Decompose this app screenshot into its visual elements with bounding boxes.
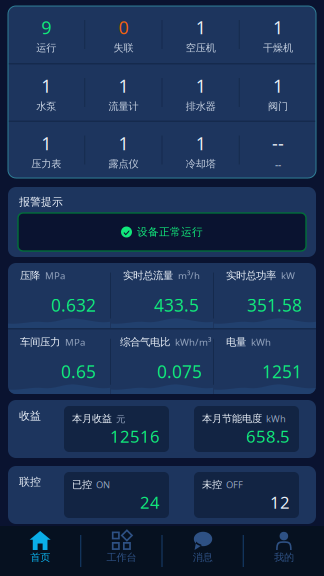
staticText: 运行 [36, 41, 56, 54]
button[interactable]: 工作台 [81, 526, 161, 576]
staticText: 工作台 [106, 551, 136, 564]
staticText: 已控 [72, 478, 92, 491]
staticText: m³/h [178, 269, 200, 282]
staticText: 12 [270, 491, 290, 514]
staticText: 351.58 [247, 293, 302, 317]
staticText: 冷却塔 [186, 157, 216, 170]
staticText: kW [281, 269, 295, 282]
staticText: 433.5 [154, 293, 199, 317]
staticText: 压降 [20, 269, 40, 282]
staticText: 空压机 [186, 41, 216, 54]
staticText: 报警提示 [19, 195, 63, 209]
staticText: 车间压力 [20, 335, 60, 349]
staticText: 首页 [30, 551, 50, 564]
staticText: 阀门 [268, 100, 288, 113]
staticText: 0.65 [61, 360, 96, 383]
staticText: 露点仪 [108, 157, 138, 170]
staticText: 0.632 [51, 293, 96, 317]
staticText: 压力表 [31, 157, 61, 170]
staticText: 未控 [202, 478, 222, 491]
staticText: kWh [251, 335, 271, 349]
staticText: 24 [140, 491, 160, 514]
staticText: 收益 [19, 409, 41, 423]
staticText: -- [275, 157, 281, 171]
staticText: 1 [196, 73, 206, 98]
staticText: 9 [41, 15, 51, 39]
staticText: OFF [226, 478, 243, 491]
staticText: 1 [196, 131, 206, 155]
staticText: 1 [41, 131, 51, 155]
button[interactable]: 我的 [244, 526, 324, 576]
staticText: 我的 [274, 551, 294, 564]
staticText: 658.5 [246, 425, 290, 448]
staticText: 0.075 [157, 360, 202, 383]
staticText: kWh [266, 412, 286, 425]
button[interactable]: 消息 [162, 526, 243, 576]
button[interactable]: 首页 [0, 526, 80, 576]
staticText: 排水器 [186, 100, 216, 113]
staticText: 消息 [193, 551, 213, 564]
staticText: 本月收益 [72, 412, 112, 425]
staticText: 实时总流量 [123, 269, 173, 282]
staticText: kWh/m³ [175, 335, 211, 349]
staticText: 元 [116, 413, 125, 425]
staticText: 综合气电比 [120, 335, 170, 349]
staticText: 干燥机 [263, 41, 293, 54]
staticText: 失联 [113, 41, 133, 54]
staticText: 1 [41, 73, 51, 98]
staticText: 本月节能电度 [202, 412, 262, 425]
staticText: 1 [118, 73, 128, 98]
staticText: 联控 [19, 475, 41, 489]
staticText: MPa [65, 335, 85, 349]
staticText: 1 [273, 15, 283, 39]
staticText: 流量计 [108, 100, 138, 113]
staticText: 1 [196, 15, 206, 39]
staticText: -- [272, 131, 284, 155]
staticText: 设备正常运行 [137, 225, 203, 239]
staticText: ON [96, 478, 110, 491]
staticText: 1251 [262, 360, 302, 383]
staticText: 水泵 [36, 100, 56, 113]
staticText: MPa [45, 269, 65, 282]
staticText: 1 [273, 73, 283, 98]
staticText: 0 [118, 15, 128, 39]
staticText: 12516 [110, 425, 160, 448]
staticText: 实时总功率 [226, 269, 276, 282]
staticText: 电量 [226, 335, 246, 349]
staticText: 1 [118, 131, 128, 155]
